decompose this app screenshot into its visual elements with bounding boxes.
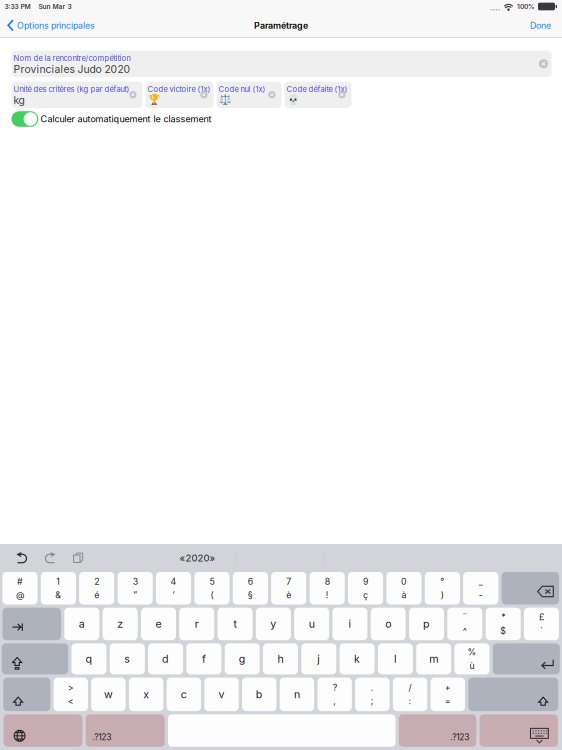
staticText: y [270, 617, 276, 630]
button[interactable]: j [301, 643, 336, 674]
staticText: 🏆 [147, 94, 159, 106]
button[interactable]: Caps lock [2, 643, 68, 674]
button[interactable]: _ - [463, 572, 498, 604]
button[interactable]: u [294, 608, 329, 640]
staticText: l [394, 652, 397, 665]
staticText: q [85, 652, 92, 665]
button[interactable]: n [280, 678, 314, 711]
staticText: g [239, 652, 246, 665]
staticText: 0 [401, 576, 407, 587]
staticText: 💀 [286, 94, 298, 106]
staticText: 3 [133, 576, 138, 587]
button[interactable]: Undo [8, 546, 36, 570]
button[interactable]: v [204, 678, 239, 711]
button[interactable]: 8 ! [310, 572, 345, 604]
staticText: «2020» [179, 552, 215, 564]
button[interactable]: c [167, 678, 201, 711]
button[interactable]: % ù [454, 643, 489, 674]
button[interactable]: h [263, 643, 298, 674]
button[interactable]: Shift [3, 678, 50, 711]
button[interactable]: «2020» [146, 546, 235, 570]
button[interactable]: Tab [3, 608, 61, 640]
button[interactable]: t [218, 608, 253, 640]
button[interactable]: / : [393, 678, 427, 711]
button[interactable]: * $ [486, 608, 521, 640]
button[interactable]: Unité des critères (kg par défaut) [11, 81, 142, 108]
staticText: # [17, 576, 23, 587]
button[interactable]: 1 & [41, 572, 76, 604]
button[interactable]: b [242, 678, 276, 711]
button[interactable]: s [110, 643, 145, 674]
button[interactable]: k [340, 643, 375, 674]
button[interactable]: l [378, 643, 413, 674]
button[interactable]: Code victoire (1x) [145, 81, 213, 108]
button[interactable]: q [71, 643, 106, 674]
button[interactable]: p [409, 608, 444, 640]
button[interactable]: 5 ( [194, 572, 229, 604]
button[interactable]: g [225, 643, 260, 674]
button[interactable]: Code nul (1x) [216, 81, 281, 108]
staticText: é [94, 590, 99, 600]
button[interactable]: .?123 [399, 714, 476, 747]
button[interactable]: space [168, 714, 395, 747]
staticText: e [155, 617, 161, 630]
staticText: h [277, 652, 283, 665]
button[interactable]: Backspace [502, 572, 559, 604]
button[interactable]: 2 é [79, 572, 114, 604]
button[interactable]: Shift [468, 678, 558, 711]
button[interactable]: y [256, 608, 291, 640]
staticText: m [429, 652, 438, 665]
button[interactable]: > < [54, 678, 88, 711]
button[interactable]: ? , [317, 678, 352, 711]
button[interactable]: 7 è [271, 572, 306, 604]
staticText: s [124, 652, 130, 665]
button[interactable]: r [179, 608, 214, 640]
button[interactable]: Code défaite (1x) [284, 81, 351, 108]
button[interactable]: w [91, 678, 126, 711]
button[interactable]: ° ) [425, 572, 460, 604]
button[interactable]: x [129, 678, 163, 711]
staticText: ç [363, 590, 368, 600]
button[interactable]: Nom de la rencontre/compétition [11, 50, 551, 77]
button[interactable]: ¨ ^ [447, 608, 482, 640]
staticText: ` [540, 625, 543, 636]
button[interactable]: Next keyboard [4, 714, 82, 747]
button[interactable]: d [148, 643, 183, 674]
button[interactable]: o [371, 608, 406, 640]
staticText: Paramétrage [254, 20, 308, 31]
button[interactable]: e [141, 608, 176, 640]
button[interactable]: i [332, 608, 367, 640]
button[interactable]: z [103, 608, 138, 640]
staticText: f [202, 652, 206, 665]
button[interactable]: . ; [355, 678, 390, 711]
staticText: w [104, 688, 113, 701]
staticText: à [401, 590, 406, 600]
staticText: 2 [94, 576, 99, 587]
button[interactable]: Paste [64, 546, 92, 570]
button[interactable]: 0 à [386, 572, 421, 604]
button[interactable]: m [416, 643, 451, 674]
staticText: £ [539, 612, 544, 622]
button[interactable]: + = [431, 678, 465, 711]
button[interactable]: 9 ç [348, 572, 383, 604]
button[interactable]: Options principales [0, 13, 101, 37]
button[interactable]: 6 § [233, 572, 268, 604]
staticText: ) [441, 590, 444, 600]
button[interactable]: Calculer automatiquement le classement [11, 111, 38, 127]
button[interactable]: Return [493, 643, 560, 674]
button[interactable]: 3 ” [118, 572, 153, 604]
button[interactable]: £ ` [524, 608, 559, 640]
button[interactable]: 4 ’ [156, 572, 191, 604]
button[interactable]: .?123 [86, 714, 165, 747]
button[interactable]: Done [519, 13, 562, 37]
button[interactable]: Redo [36, 546, 64, 570]
staticText: Sun Mar 3 [38, 2, 71, 11]
button[interactable]: # @ [2, 572, 37, 604]
staticText: Code défaite (1x) [286, 85, 347, 94]
button[interactable]: a [64, 608, 99, 640]
staticText: . [371, 682, 374, 693]
button[interactable]: Dismiss keyboard [480, 714, 558, 747]
button[interactable]: f [186, 643, 221, 674]
